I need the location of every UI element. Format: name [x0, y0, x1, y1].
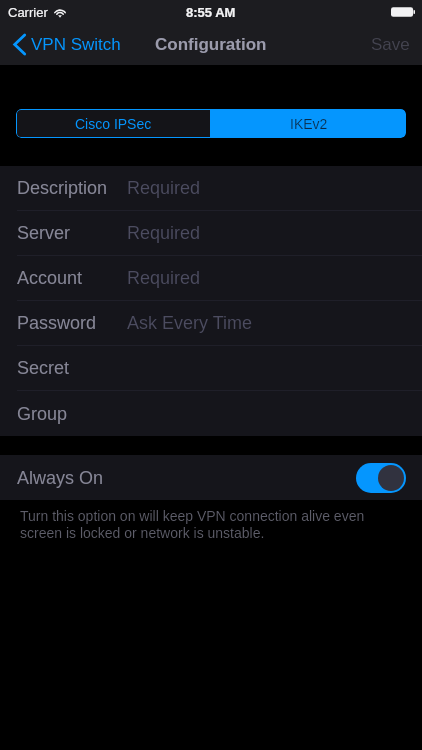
- button[interactable]: Save: [357, 29, 422, 60]
- staticText: 8:55 AM: [186, 5, 236, 20]
- staticText: Turn this option on will keep VPN connec…: [20, 508, 382, 541]
- button[interactable]: VPN Switch: [0, 29, 131, 60]
- other: Always On toggle: [356, 463, 406, 493]
- staticText: Cisco IPSec: [75, 116, 152, 132]
- button[interactable]: Cisco IPSec: [16, 109, 211, 138]
- button[interactable]: Secret: [0, 346, 422, 391]
- button[interactable]: Group: [0, 391, 422, 436]
- staticText: Server: [17, 223, 71, 243]
- button[interactable]: Password: [0, 301, 422, 346]
- button[interactable]: IKEv2: [211, 109, 406, 138]
- button[interactable]: Description: [0, 166, 422, 211]
- staticText: Required: [127, 223, 201, 243]
- staticText: Description: [17, 178, 108, 198]
- button[interactable]: Always On: [0, 455, 422, 500]
- staticText: Secret: [17, 358, 70, 378]
- staticText: Required: [127, 268, 201, 288]
- staticText: VPN Switch: [31, 35, 121, 54]
- staticText: Ask Every Time: [127, 313, 253, 333]
- staticText: Group: [17, 404, 68, 424]
- staticText: Required: [127, 178, 201, 198]
- staticText: Save: [371, 35, 410, 54]
- staticText: Account: [17, 268, 83, 288]
- staticText: Password: [17, 313, 97, 333]
- button[interactable]: Account: [0, 256, 422, 301]
- staticText: Configuration: [155, 35, 267, 54]
- staticText: IKEv2: [290, 116, 328, 132]
- staticText: Always On: [17, 468, 104, 488]
- button[interactable]: Server: [0, 211, 422, 256]
- staticText: Carrier: [8, 5, 48, 20]
